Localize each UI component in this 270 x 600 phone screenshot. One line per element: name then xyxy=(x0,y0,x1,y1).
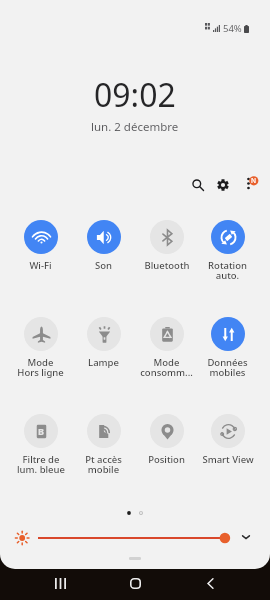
staticText: Wi-Fi xyxy=(29,259,52,272)
staticText: Son xyxy=(95,259,112,272)
button[interactable]: B xyxy=(9,414,72,476)
staticText: B xyxy=(38,425,44,437)
button[interactable]: Settings xyxy=(210,172,235,197)
staticText: Pt accès mobile xyxy=(85,453,122,476)
button[interactable]: Back xyxy=(195,571,226,596)
button[interactable]: Son xyxy=(72,220,135,272)
staticText: 54% xyxy=(223,22,242,35)
button[interactable]: Expand quick settings xyxy=(236,527,256,547)
button[interactable]: Search xyxy=(185,172,210,197)
staticText: Mode consomm... xyxy=(140,356,193,379)
staticText: Mode Hors ligne xyxy=(17,356,64,379)
staticText: 09:02 xyxy=(94,73,176,117)
button[interactable]: Mode consomm... xyxy=(135,317,198,379)
button[interactable]: Recents xyxy=(45,571,76,596)
button[interactable]: Données mobiles xyxy=(196,317,259,379)
button[interactable]: More options xyxy=(235,172,260,197)
staticText: Position xyxy=(148,453,185,466)
staticText: Bluetooth xyxy=(144,259,190,272)
button[interactable]: Position xyxy=(135,414,198,466)
button[interactable]: Pt accès mobile xyxy=(72,414,135,476)
staticText: N xyxy=(251,176,257,185)
staticText: Smart View xyxy=(202,453,254,466)
staticText: lun. 2 décembre xyxy=(91,119,179,135)
staticText: Rotation auto. xyxy=(208,259,247,282)
button[interactable]: Wi-Fi xyxy=(9,220,72,272)
button[interactable]: Mode Hors ligne xyxy=(9,317,72,379)
button[interactable]: Home xyxy=(120,571,151,596)
staticText: Données mobiles xyxy=(207,356,248,379)
button[interactable]: Smart View xyxy=(196,414,259,466)
button[interactable]: Rotation auto. xyxy=(196,220,259,282)
staticText: Lampe xyxy=(88,356,119,369)
staticText: Filtre de lum. bleue xyxy=(17,453,65,476)
button[interactable]: Lampe xyxy=(72,317,135,369)
button[interactable]: Bluetooth xyxy=(135,220,198,272)
